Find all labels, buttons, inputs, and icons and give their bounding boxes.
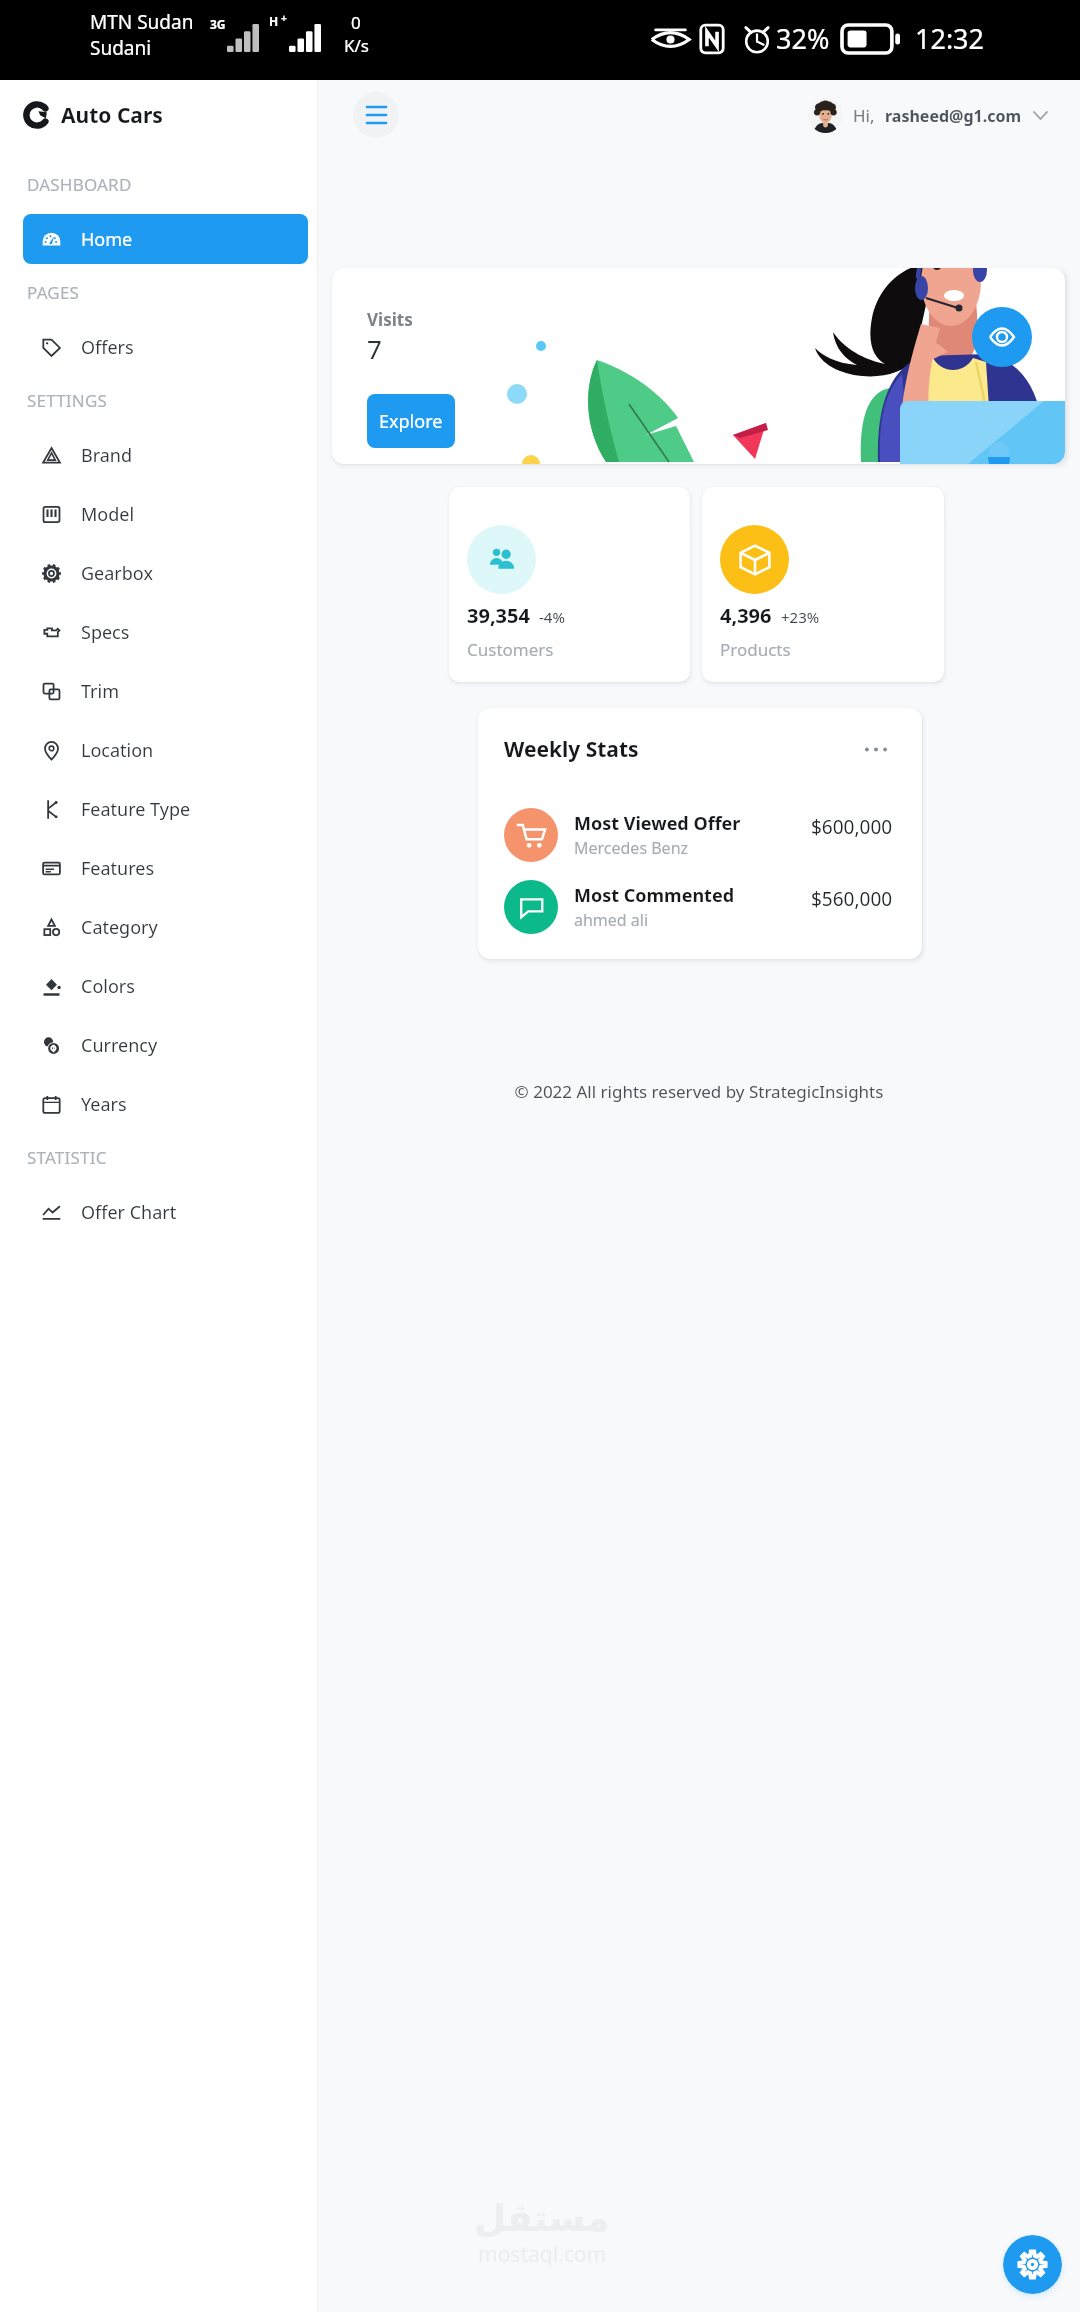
button[interactable]: Trim — [23, 666, 308, 716]
staticText: Products — [720, 638, 791, 661]
staticText: 4,396 — [720, 602, 772, 629]
button[interactable]: Explore — [367, 394, 455, 448]
staticText: 39,354 — [467, 602, 530, 629]
staticText: rasheed@g1.com — [885, 105, 1022, 127]
staticText: Most Viewed Offer — [574, 811, 741, 836]
staticText: + — [281, 11, 287, 25]
staticText: SETTINGS — [27, 389, 108, 412]
button[interactable]: Years — [23, 1079, 308, 1129]
staticText: Specs — [81, 620, 130, 645]
button[interactable]: Currency — [23, 1020, 308, 1070]
button[interactable]: Feature Type — [23, 784, 308, 834]
staticText: K/s — [344, 34, 369, 57]
staticText: 7 — [367, 331, 382, 366]
staticText: -4% — [539, 607, 565, 627]
staticText: Features — [81, 856, 155, 881]
button[interactable]: Hi, — [808, 98, 1047, 133]
staticText: MTN Sudan — [90, 9, 194, 35]
staticText: Hi, — [853, 104, 875, 127]
staticText: Location — [81, 738, 154, 763]
staticText: مستقل — [474, 2197, 610, 2240]
button[interactable]: Most Commented — [504, 880, 893, 934]
staticText: Gearbox — [81, 561, 153, 586]
staticText: 12:32 — [915, 20, 985, 57]
staticText: mostaql.com — [478, 2240, 607, 2269]
staticText: Mercedes Benz — [574, 837, 689, 859]
staticText: © 2022 All rights reserved by StrategicI… — [318, 1080, 1080, 1103]
button[interactable]: Model — [23, 489, 308, 539]
staticText: DASHBOARD — [27, 173, 132, 196]
staticText: Home — [81, 227, 133, 252]
button[interactable]: Settings — [1003, 2235, 1062, 2294]
button[interactable]: Menu — [353, 92, 399, 138]
staticText: Colors — [81, 974, 135, 999]
staticText: Visits — [367, 308, 413, 331]
staticText: Category — [81, 915, 158, 940]
staticText: Brand — [81, 443, 133, 468]
staticText: Currency — [81, 1033, 158, 1058]
button[interactable]: Home — [23, 214, 308, 264]
staticText: Weekly Stats — [504, 735, 639, 764]
button[interactable]: Offer Chart — [23, 1187, 308, 1237]
staticText: Years — [81, 1092, 127, 1117]
staticText: $560,000 — [811, 886, 893, 912]
staticText: ahmed ali — [574, 909, 649, 931]
button[interactable]: Features — [23, 843, 308, 893]
staticText: Customers — [467, 638, 554, 661]
staticText: Model — [81, 502, 135, 527]
staticText: Feature Type — [81, 797, 191, 822]
staticText: Explore — [379, 409, 443, 434]
staticText: +23% — [781, 607, 820, 627]
staticText: Sudani — [90, 35, 152, 61]
staticText: Offer Chart — [81, 1200, 177, 1225]
button[interactable]: Gearbox — [23, 548, 308, 598]
staticText: H — [269, 13, 279, 29]
button[interactable]: Location — [23, 725, 308, 775]
staticText: 0 — [351, 11, 361, 34]
staticText: Trim — [81, 679, 120, 704]
button[interactable]: More options — [859, 732, 893, 766]
staticText: $600,000 — [811, 814, 893, 840]
button[interactable]: Brand — [23, 430, 308, 480]
button[interactable]: 4,396 — [702, 487, 944, 682]
button[interactable]: Most Viewed Offer — [504, 808, 893, 862]
staticText: 3G — [210, 16, 226, 32]
staticText: 32% — [776, 20, 830, 57]
staticText: PAGES — [27, 281, 80, 304]
button[interactable]: Offers — [23, 322, 308, 372]
button[interactable]: 39,354 — [449, 487, 690, 682]
staticText: Offers — [81, 335, 134, 360]
staticText: Most Commented — [574, 883, 735, 908]
button[interactable]: Category — [23, 902, 308, 952]
button[interactable]: Colors — [23, 961, 308, 1011]
button[interactable]: Specs — [23, 607, 308, 657]
staticText: STATISTIC — [27, 1146, 107, 1169]
staticText: Auto Cars — [61, 101, 163, 130]
